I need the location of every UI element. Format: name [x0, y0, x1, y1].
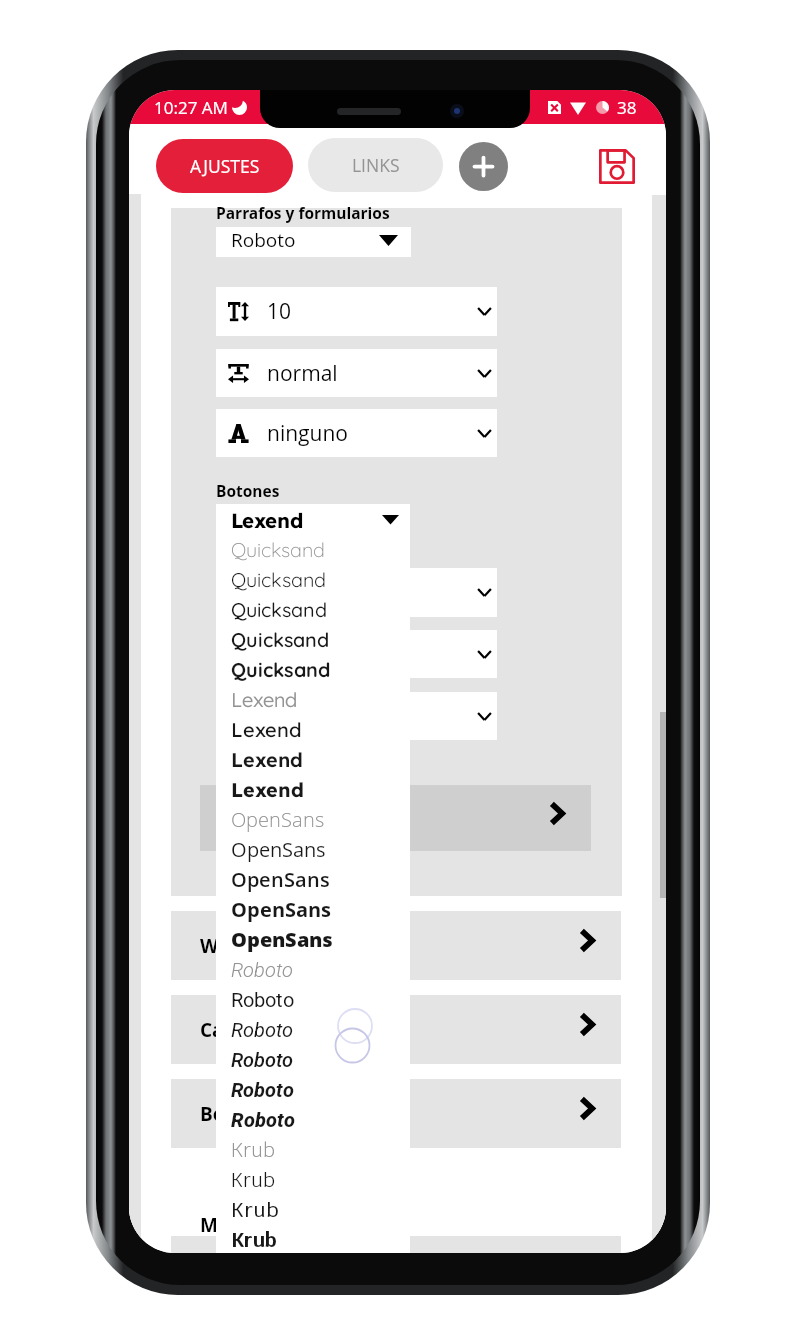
button[interactable]: [171, 1236, 621, 1253]
button[interactable]: Krub: [216, 1164, 410, 1194]
button[interactable]: Krub: [216, 1224, 410, 1253]
staticText: 38: [617, 96, 637, 119]
button[interactable]: Roboto: [216, 984, 410, 1014]
staticText: ninguno: [267, 419, 349, 448]
staticText: 10:27 AM: [154, 96, 228, 119]
button[interactable]: Lexend, selected font: [216, 504, 410, 534]
staticText: AJUSTES: [190, 154, 260, 178]
button[interactable]: 10: [216, 287, 497, 336]
button[interactable]: OpenSans: [216, 894, 410, 924]
button[interactable]: LINKS: [308, 138, 443, 192]
button[interactable]: Add: [459, 142, 508, 191]
button[interactable]: [200, 785, 591, 851]
button[interactable]: Krub: [216, 1194, 410, 1224]
button[interactable]: Widgets: [171, 911, 621, 980]
button[interactable]: Lexend: [216, 774, 410, 804]
button[interactable]: [216, 692, 497, 740]
button[interactable]: Roboto: [216, 1074, 410, 1104]
button[interactable]: Quicksand: [216, 564, 410, 594]
button[interactable]: Quicksand: [216, 534, 410, 564]
button[interactable]: Krub: [216, 1134, 410, 1164]
staticText: LINKS: [352, 153, 400, 177]
staticText: normal: [267, 359, 338, 388]
staticText: 10: [267, 297, 292, 326]
button[interactable]: Cabecera: [171, 995, 621, 1064]
button[interactable]: Roboto: [216, 227, 411, 257]
button[interactable]: Roboto: [216, 954, 410, 984]
button[interactable]: Lexend: [216, 714, 410, 744]
button[interactable]: Save: [595, 144, 639, 188]
staticText: Cabecera: [200, 1017, 288, 1043]
button[interactable]: Lexend: [216, 684, 410, 714]
staticText: Botones: [200, 1101, 278, 1127]
button[interactable]: [216, 568, 497, 617]
staticText: Botones: [216, 480, 280, 501]
staticText: Mapa: [200, 1212, 253, 1238]
button[interactable]: OpenSans: [216, 864, 410, 894]
button[interactable]: Roboto: [216, 1104, 410, 1134]
button[interactable]: normal: [216, 349, 497, 397]
button[interactable]: OpenSans: [216, 804, 410, 834]
button[interactable]: OpenSans: [216, 834, 410, 864]
button[interactable]: AJUSTES: [156, 139, 293, 193]
button[interactable]: Roboto: [216, 1044, 410, 1074]
button[interactable]: Quicksand: [216, 594, 410, 624]
staticText: Parrafos y formularios: [216, 202, 390, 223]
button[interactable]: [216, 630, 497, 678]
button[interactable]: Quicksand: [216, 654, 410, 684]
button[interactable]: Lexend: [216, 744, 410, 774]
button[interactable]: Botones: [171, 1079, 621, 1148]
button[interactable]: Quicksand: [216, 624, 410, 654]
staticText: Widgets: [200, 933, 276, 959]
button[interactable]: Roboto: [216, 1014, 410, 1044]
staticText: Roboto: [231, 227, 296, 253]
button[interactable]: OpenSans: [216, 924, 410, 954]
button[interactable]: ninguno: [216, 409, 497, 457]
